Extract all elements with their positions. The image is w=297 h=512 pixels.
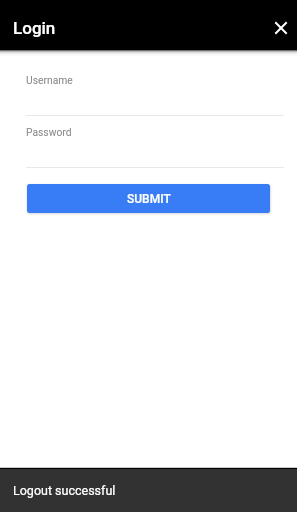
staticText: Username — [26, 74, 73, 86]
staticText: Login — [13, 18, 56, 38]
staticText: Logout successful — [13, 483, 116, 498]
button[interactable]: Password — [26, 120, 284, 168]
staticText: SUBMIT — [127, 192, 171, 206]
button[interactable]: SUBMIT — [27, 184, 270, 213]
button[interactable]: Close — [263, 10, 297, 46]
button[interactable]: Logout successful — [0, 469, 297, 512]
button[interactable]: Username — [26, 68, 284, 116]
staticText: Password — [26, 126, 72, 138]
